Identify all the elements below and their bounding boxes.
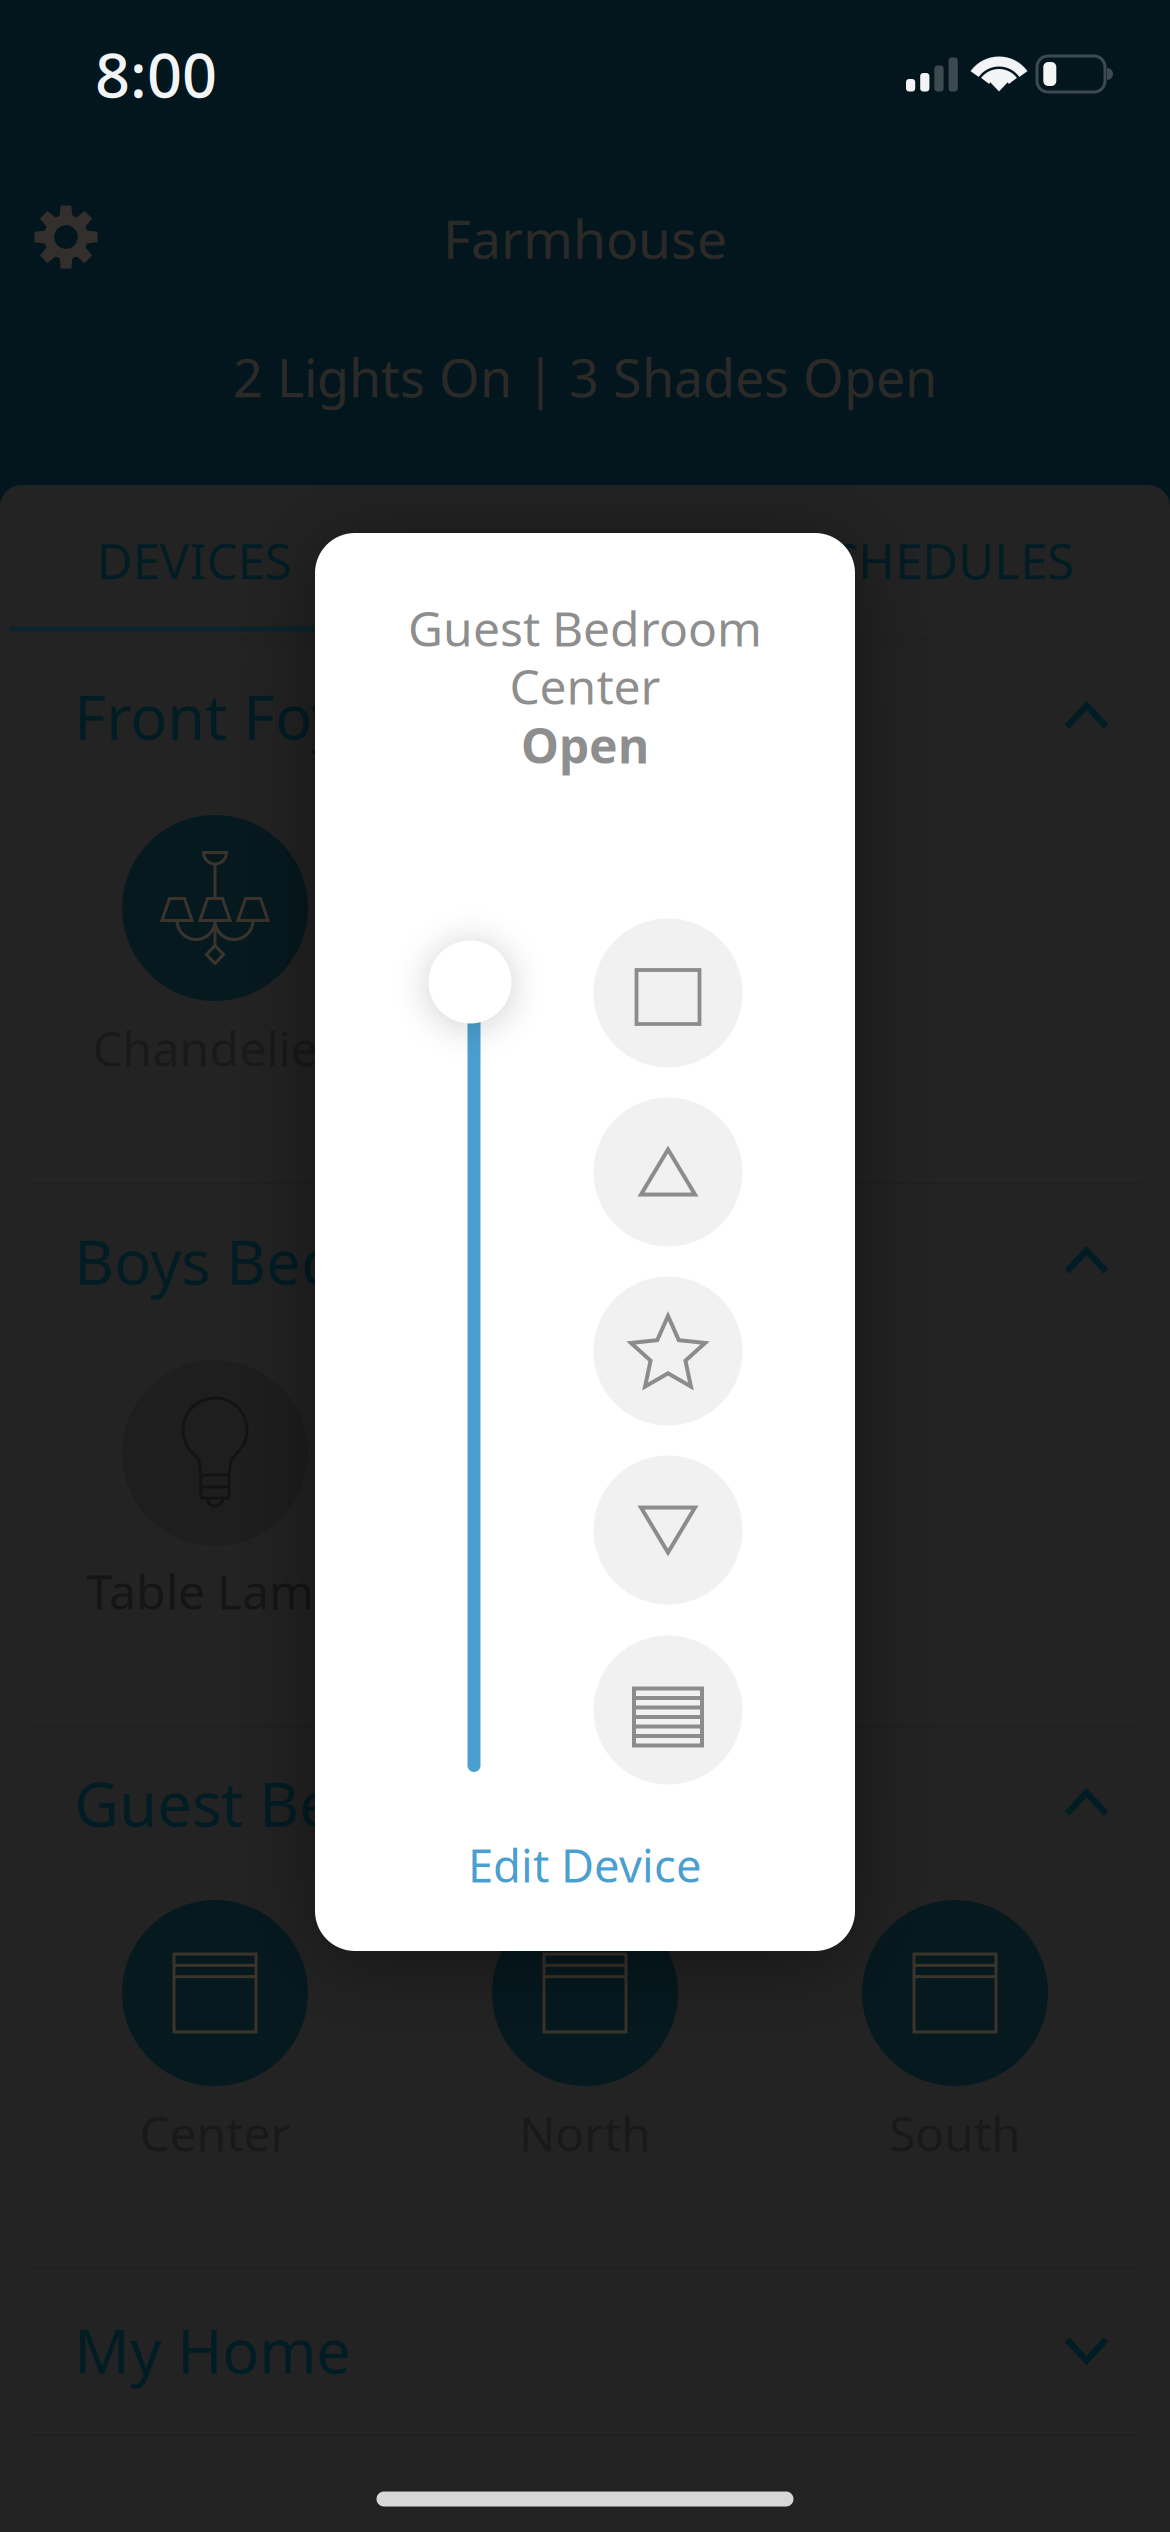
staticText: SCHEDULES <box>800 527 1074 593</box>
staticText: Chandelier <box>92 1016 337 1080</box>
staticText: Open <box>521 713 649 777</box>
button[interactable]: My Home <box>0 2285 1170 2415</box>
button[interactable]: Blinds <box>593 1635 742 1784</box>
staticText: Front Foyer <box>74 675 402 757</box>
button[interactable]: SCHEDULES <box>767 505 1107 615</box>
button[interactable]: Boys Bedroom <box>0 1196 1170 1326</box>
button[interactable]: North <box>415 1900 755 2180</box>
staticText: 2 Lights On | 3 Shades Open <box>233 342 937 412</box>
button[interactable]: Center <box>45 1900 385 2180</box>
staticText: 8:00 <box>95 33 217 115</box>
staticText: Table Lamp <box>86 1559 344 1623</box>
button[interactable]: Stop <box>593 918 742 1067</box>
staticText: DEVICES <box>96 527 291 593</box>
staticText: Farmhouse <box>443 203 727 273</box>
button[interactable]: Edit Device <box>395 1815 775 1915</box>
staticText: Center <box>509 654 660 718</box>
button[interactable]: DEVICES <box>44 505 344 615</box>
button[interactable]: Settings <box>11 182 121 292</box>
staticText: Center <box>139 2101 290 2165</box>
staticText: Guest Bedroom <box>74 1762 527 1844</box>
button[interactable]: Open <box>593 1097 742 1246</box>
button[interactable]: Front Foyer <box>0 651 1170 781</box>
staticText: Guest Bedroom <box>408 596 762 660</box>
button[interactable]: Favorite <box>593 1276 742 1425</box>
staticText: North <box>519 2101 651 2165</box>
button[interactable]: Guest Bedroom <box>0 1738 1170 1868</box>
staticText: South <box>889 2101 1021 2165</box>
button[interactable]: Close <box>593 1455 742 1604</box>
staticText: Edit Device <box>468 1835 702 1895</box>
button[interactable]: Table Lamp <box>45 1360 385 1638</box>
button[interactable]: South <box>785 1900 1125 2180</box>
staticText: My Home <box>74 2309 351 2391</box>
staticText: Boys Bedroom <box>74 1220 494 1302</box>
button[interactable]: Chandelier <box>45 815 385 1095</box>
